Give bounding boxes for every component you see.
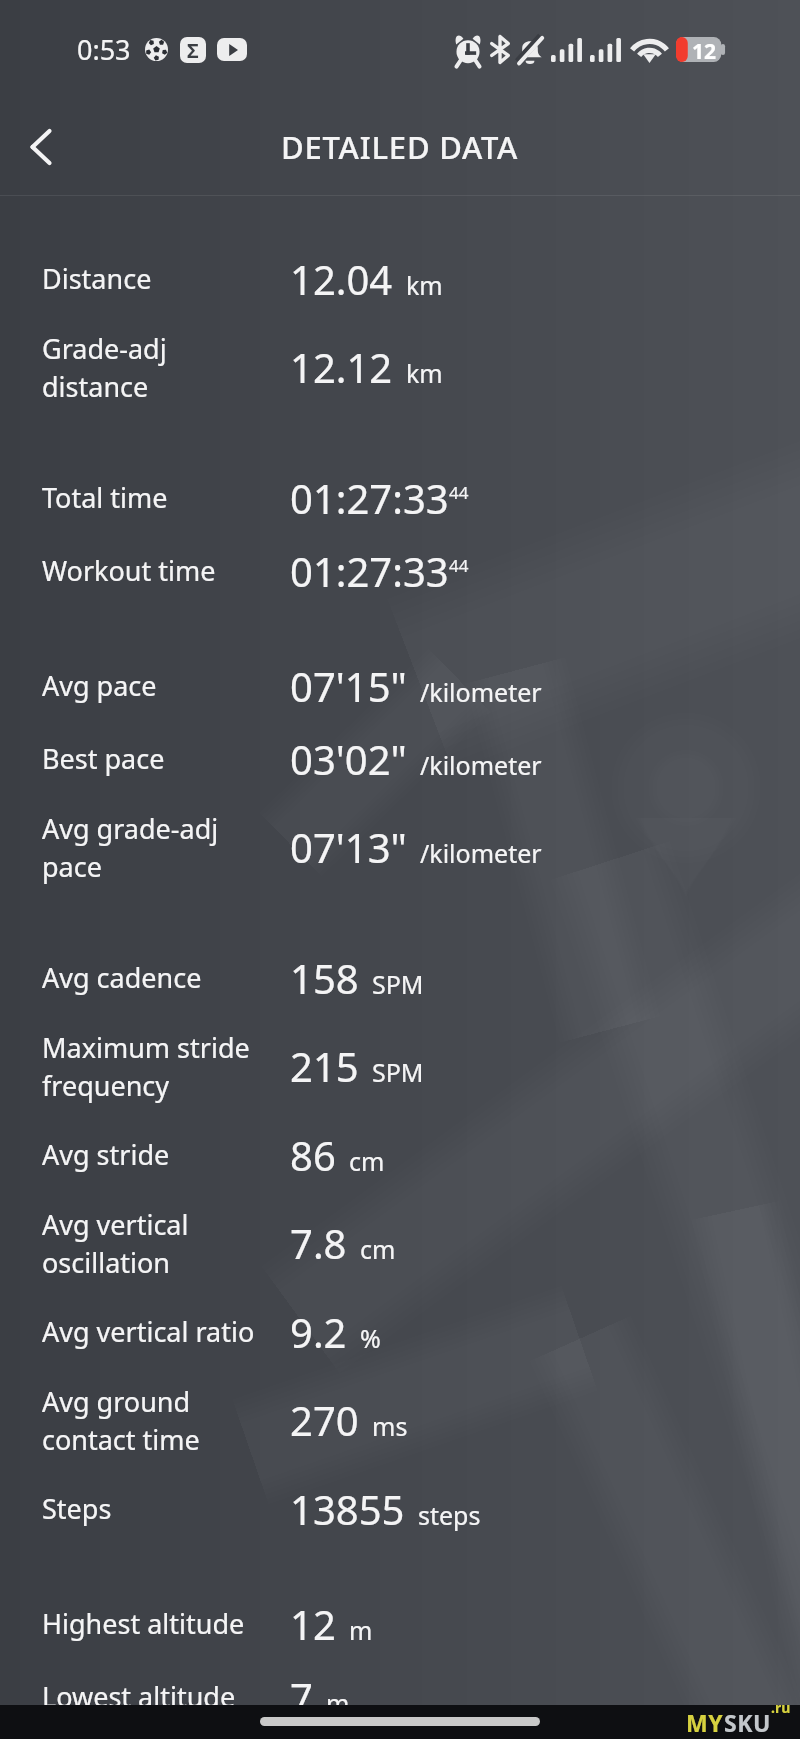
staticText: 0:53 [77,31,131,68]
staticText: ms [372,1409,408,1443]
staticText: Avg stride [42,1136,290,1173]
button[interactable]: Avg pace [0,649,800,722]
button[interactable]: Distance [0,242,800,315]
staticText: Avg grade-adj pace [42,810,290,885]
staticText: % [360,1321,381,1355]
staticText: /kilometer [420,748,542,782]
staticText: Avg cadence [42,959,290,996]
button[interactable]: Avg cadence [0,941,800,1014]
staticText: SPM [372,1055,424,1089]
staticText: MY [686,1707,724,1738]
staticText: cm [349,1144,385,1178]
staticText: m [349,1613,373,1647]
staticText: Total time [42,479,290,516]
staticText: 12 [290,1597,336,1651]
button[interactable]: Total time [0,461,800,534]
staticText: Maximum stride frequency [42,1029,290,1104]
button[interactable]: Avg vertical oscillation [0,1191,800,1295]
staticText: 86 [290,1128,336,1182]
button[interactable]: Grade-adj distance [0,315,800,419]
staticText: Avg vertical oscillation [42,1206,290,1281]
staticText: cm [360,1232,396,1266]
button[interactable]: Steps [0,1472,800,1545]
staticText: 158 [290,951,359,1005]
staticText: 01:27:33 [290,471,449,525]
staticText: 07'15" [290,659,407,713]
button[interactable]: Back [10,116,72,178]
staticText: Avg pace [42,667,290,704]
staticText: 270 [290,1393,359,1447]
staticText: Distance [42,260,290,297]
button[interactable]: Highest altitude [0,1587,800,1660]
button[interactable]: Avg grade-adj pace [0,795,800,899]
staticText: 44 [449,481,469,504]
staticText: 07'13" [290,820,407,874]
staticText: 9.2 [290,1305,347,1359]
button[interactable]: Lowest altitude [0,1660,800,1733]
staticText: SKU [724,1707,771,1738]
staticText: 12.04 [290,252,393,306]
button[interactable]: Avg ground contact time [0,1368,800,1472]
staticText: Highest altitude [42,1605,290,1642]
staticText: 12 [692,37,717,62]
staticText: km [406,268,443,302]
button[interactable]: Maximum stride frequency [0,1014,800,1118]
staticText: m [326,1686,350,1720]
button[interactable]: Avg stride [0,1118,800,1191]
staticText: km [406,356,443,390]
staticText: 7.8 [290,1216,347,1270]
staticText: 44 [449,554,469,577]
staticText: SPM [372,967,424,1001]
staticText: Workout time [42,552,290,589]
button[interactable]: Avg vertical ratio [0,1295,800,1368]
staticText: 12.12 [290,340,393,394]
staticText: DETAILED DATA [281,126,519,168]
staticText: steps [418,1498,481,1532]
staticText: Σ [187,37,199,63]
staticText: Grade-adj distance [42,330,290,405]
staticText: 03'02" [290,732,407,786]
staticText: Lowest altitude [42,1678,290,1715]
staticText: /kilometer [420,836,542,870]
staticText: 7 [290,1670,313,1724]
staticText: Steps [42,1490,290,1527]
staticText: Avg ground contact time [42,1383,290,1458]
staticText: 215 [290,1039,359,1093]
button[interactable]: Workout time [0,534,800,607]
staticText: .ru [771,1698,791,1717]
staticText: /kilometer [420,675,542,709]
staticText: Best pace [42,740,290,777]
staticText: Avg vertical ratio [42,1313,290,1350]
button[interactable]: Best pace [0,722,800,795]
staticText: 01:27:33 [290,544,449,598]
staticText: 13855 [290,1482,405,1536]
